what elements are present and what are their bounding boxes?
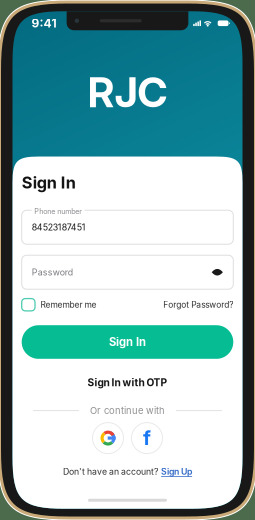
staticText: Password: [32, 267, 73, 277]
staticText: Sign In: [109, 335, 146, 349]
staticText: f: [143, 426, 151, 450]
staticText: Don't have an account?: [63, 466, 158, 477]
button[interactable]: Continue with Google: [92, 423, 123, 454]
staticText: 9:41: [31, 16, 56, 30]
staticText: Sign Up: [161, 466, 192, 477]
staticText: Remember me: [40, 300, 96, 310]
staticText: 84523187451: [32, 222, 86, 232]
button[interactable]: Forgot Password?: [163, 300, 233, 310]
staticText: Sign In with OTP: [87, 376, 167, 389]
staticText: RJC: [87, 67, 167, 117]
staticText: Forgot Password?: [163, 300, 233, 310]
staticText: Or continue with: [90, 405, 165, 416]
button[interactable]: Don't have an account?: [22, 466, 233, 477]
staticText: Sign In: [22, 173, 76, 193]
staticText: Phone number: [34, 207, 82, 216]
button[interactable]: Sign In with OTP: [22, 376, 233, 389]
button[interactable]: Sign In: [22, 325, 233, 359]
button[interactable]: Remember me: [22, 299, 96, 311]
button[interactable]: Continue with Facebook: [131, 423, 162, 454]
